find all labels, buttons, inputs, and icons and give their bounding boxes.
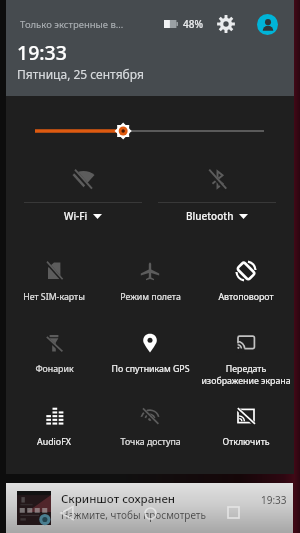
button[interactable]: По спутникам GPS — [102, 332, 198, 375]
staticText: Только экстренные в… — [20, 18, 124, 31]
button[interactable]: Скриншот сохранен — [6, 483, 293, 533]
staticText: AudioFX — [37, 436, 71, 448]
staticText: По спутникам GPS — [111, 363, 190, 375]
button[interactable]: Точка доступа — [102, 405, 198, 448]
button[interactable]: Передать изображение экрана — [198, 332, 294, 386]
staticText: Автоповорот — [218, 291, 274, 303]
staticText: Передать изображение экрана — [201, 363, 291, 386]
button[interactable]: Назад — [60, 506, 74, 520]
button[interactable]: Обзор — [227, 506, 240, 519]
button[interactable]: Главный экран — [144, 507, 157, 520]
staticText: Нажмите, чтобы просмотреть — [61, 508, 206, 522]
staticText: 48% — [183, 17, 203, 31]
staticText: Скриншот сохранен — [61, 491, 176, 507]
staticText: 19:33 — [17, 39, 67, 66]
button[interactable]: Фонарик — [6, 332, 102, 375]
button[interactable]: AudioFX — [6, 405, 102, 448]
button[interactable]: Настройки — [215, 13, 237, 35]
button[interactable]: Отключить — [198, 405, 294, 448]
staticText: Режим полета — [120, 291, 181, 303]
staticText: Пятница, 25 сентября — [17, 66, 144, 82]
staticText: Wi-Fi — [64, 209, 88, 223]
button[interactable]: Яркость — [6, 120, 294, 142]
staticText: 19:33 — [261, 493, 287, 507]
button[interactable]: Режим полета — [102, 260, 198, 303]
button[interactable]: Wi-Fi — [16, 156, 150, 229]
staticText: Отключить — [222, 436, 270, 448]
button[interactable]: Автоповорот — [198, 260, 294, 303]
staticText: Фонарик — [35, 363, 74, 375]
button[interactable]: Нет SIM-карты — [6, 260, 102, 303]
button[interactable]: Bluetooth — [150, 156, 284, 229]
staticText: Точка доступа — [120, 436, 181, 448]
button[interactable]: Пользователь — [257, 14, 278, 35]
staticText: Нет SIM-карты — [23, 291, 85, 303]
staticText: Bluetooth — [186, 209, 234, 223]
